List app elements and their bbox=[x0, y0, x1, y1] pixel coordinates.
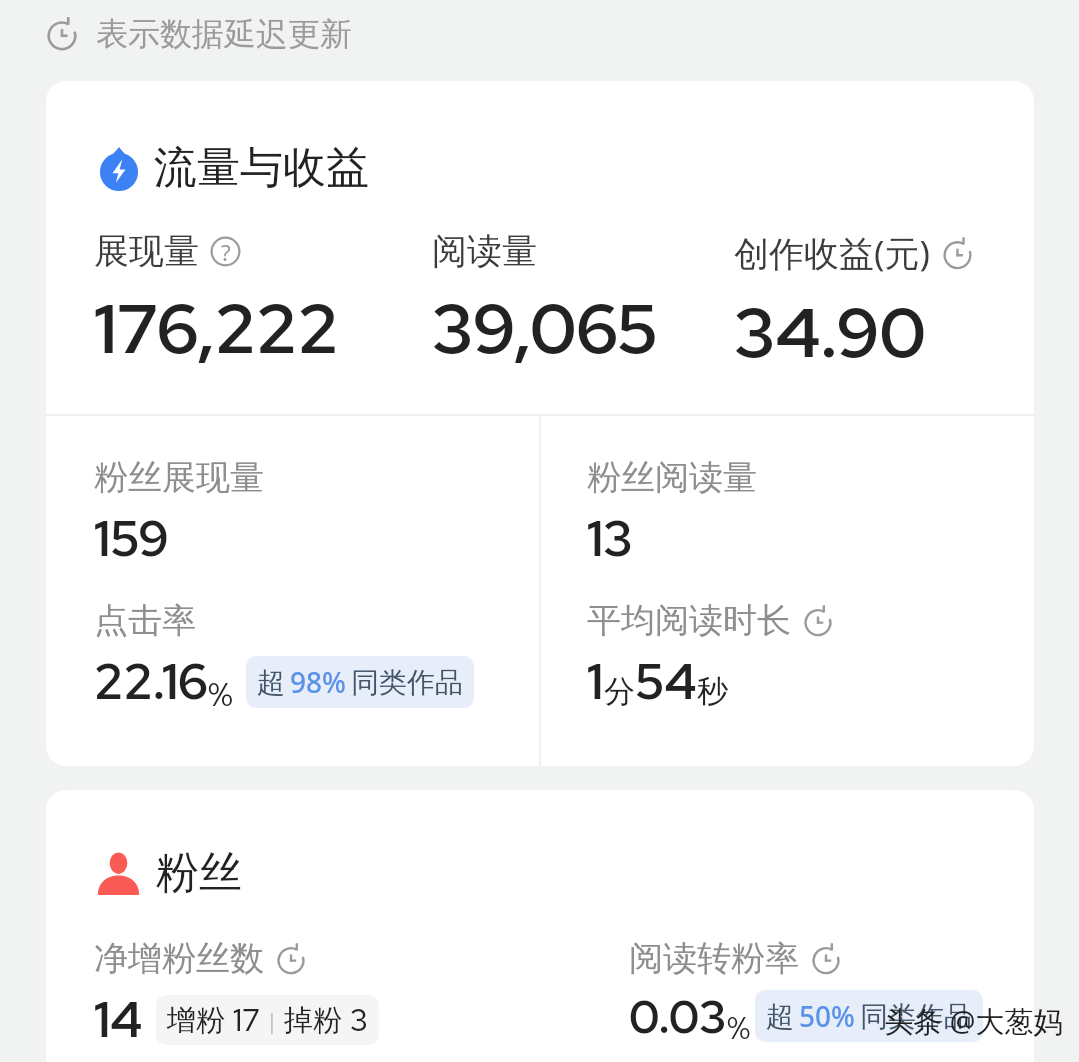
staticText: 秒 bbox=[697, 672, 728, 711]
button[interactable]: 超 bbox=[246, 656, 474, 708]
button[interactable]: 粉丝 bbox=[97, 846, 242, 900]
staticText: 点击率 bbox=[94, 599, 196, 642]
staticText: % bbox=[208, 672, 233, 716]
staticText: 176,222 bbox=[94, 283, 339, 374]
staticText: 流量与收益 bbox=[154, 141, 369, 195]
staticText: 14 bbox=[94, 987, 143, 1052]
staticText: 3 bbox=[350, 1000, 368, 1040]
button[interactable]: 超 bbox=[755, 990, 983, 1042]
staticText: 创作收益(元) bbox=[734, 229, 931, 277]
staticText: 展现量 bbox=[94, 229, 199, 273]
staticText: | bbox=[260, 1005, 284, 1035]
staticText: 22.16 bbox=[94, 649, 208, 714]
staticText: 表示数据延迟更新 bbox=[96, 14, 352, 54]
staticText: 粉丝阅读量 bbox=[587, 456, 757, 499]
staticText: 粉丝 bbox=[156, 846, 242, 900]
staticText: % bbox=[727, 1007, 751, 1048]
staticText: 159 bbox=[94, 506, 169, 571]
staticText: 17 bbox=[233, 1000, 260, 1040]
staticText: 净增粉丝数 bbox=[94, 937, 264, 980]
button[interactable]: 表示数据延迟更新 bbox=[46, 14, 352, 54]
staticText: 39,065 bbox=[432, 283, 659, 374]
staticText: 分 bbox=[604, 672, 635, 711]
staticText: 1 bbox=[587, 649, 604, 714]
staticText: 50% bbox=[799, 997, 855, 1035]
staticText: ? bbox=[221, 237, 231, 267]
staticText: 平均阅读时长 bbox=[587, 599, 791, 642]
staticText: 0.03 bbox=[629, 987, 727, 1047]
staticText: 超 bbox=[257, 665, 285, 700]
staticText: 增粉 bbox=[167, 1002, 225, 1039]
staticText: 阅读转粉率 bbox=[629, 937, 799, 980]
staticText: 头条 @大葱妈 bbox=[884, 1001, 1063, 1041]
button[interactable]: 流量与收益 bbox=[98, 141, 369, 195]
staticText: 34.90 bbox=[734, 287, 927, 378]
staticText: 粉丝展现量 bbox=[94, 456, 264, 499]
staticText: 阅读量 bbox=[432, 229, 537, 273]
staticText: 98% bbox=[290, 663, 346, 701]
button[interactable]: 增粉 bbox=[156, 995, 379, 1045]
staticText: 54 bbox=[635, 649, 697, 714]
staticText: 超 bbox=[766, 999, 794, 1034]
staticText: 同类作品 bbox=[860, 999, 972, 1034]
staticText: 掉粉 bbox=[284, 1002, 342, 1039]
staticText: 13 bbox=[587, 506, 633, 571]
staticText: 同类作品 bbox=[351, 665, 463, 700]
